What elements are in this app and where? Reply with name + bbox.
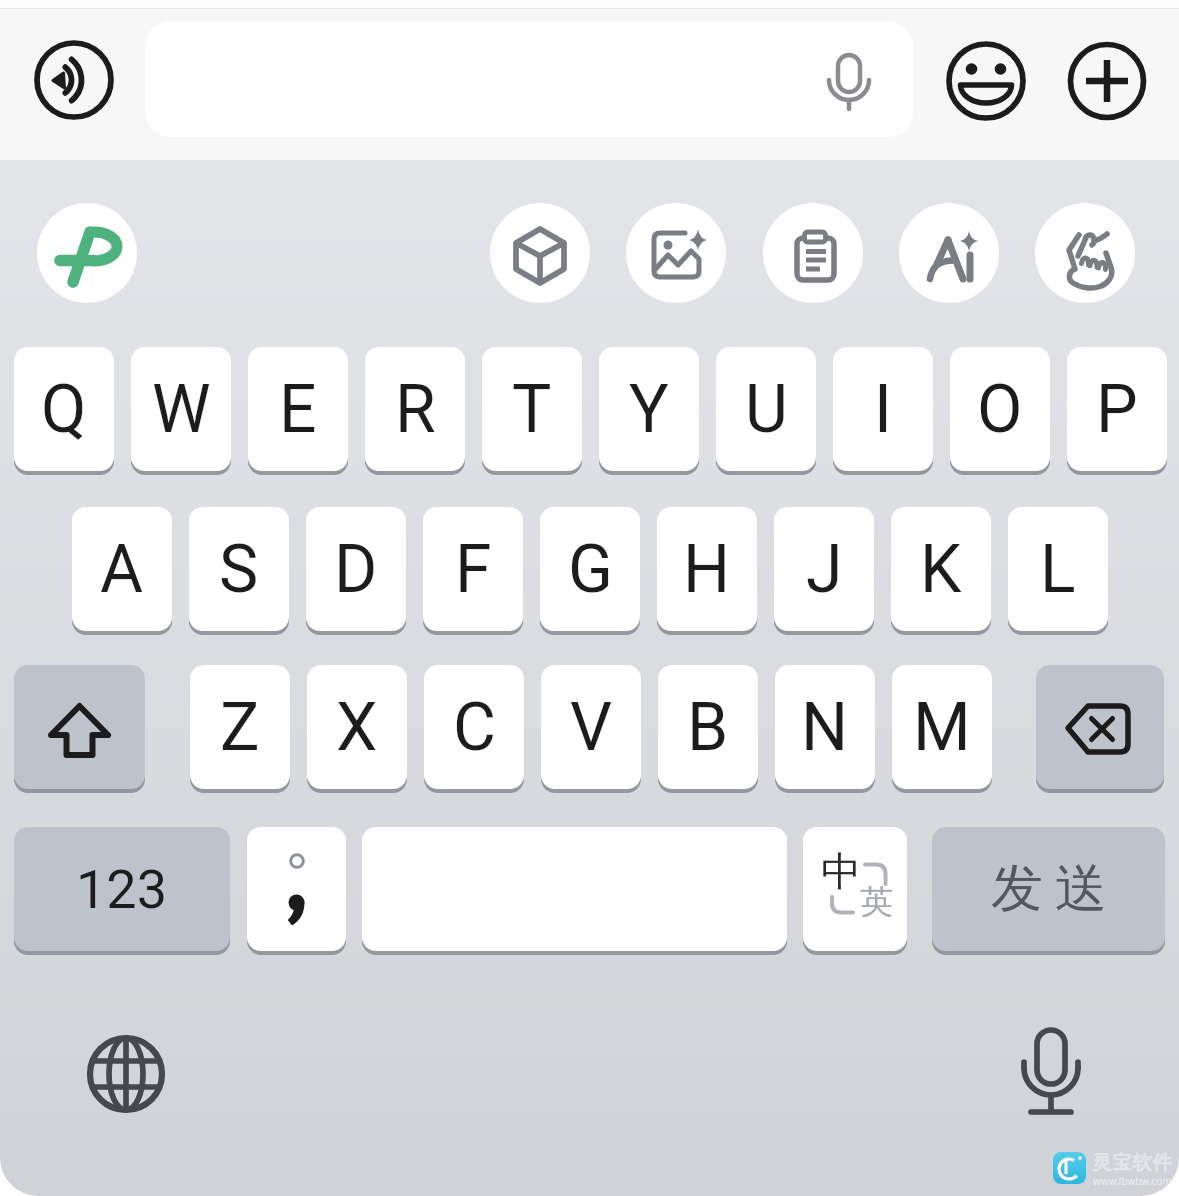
button[interactable]: J	[774, 507, 874, 631]
button[interactable]	[1068, 42, 1146, 120]
staticText: Q	[41, 371, 87, 448]
staticText: A	[100, 531, 144, 608]
button[interactable]: I	[833, 347, 933, 471]
button[interactable]: K	[891, 507, 991, 631]
button[interactable]: B	[658, 665, 758, 789]
staticText: H	[683, 531, 731, 608]
staticText: T	[512, 371, 552, 448]
button[interactable]	[626, 203, 726, 303]
button[interactable]: N	[775, 665, 875, 789]
staticText: J	[806, 531, 843, 608]
button[interactable]: A	[72, 507, 172, 631]
staticText: O	[977, 371, 1023, 448]
button[interactable]: L	[1008, 507, 1108, 631]
button[interactable]: G	[540, 507, 640, 631]
staticText: D	[334, 531, 378, 608]
staticText: 英	[860, 881, 893, 923]
staticText: L	[1040, 531, 1076, 608]
button[interactable]: S	[189, 507, 289, 631]
button[interactable]	[763, 203, 863, 303]
staticText: M	[913, 689, 971, 766]
button[interactable]: 中	[803, 827, 907, 951]
button[interactable]: C	[424, 665, 524, 789]
button[interactable]: H	[657, 507, 757, 631]
button[interactable]: E	[248, 347, 348, 471]
staticText: www.lbwbw.com	[1093, 1174, 1172, 1188]
button[interactable]	[145, 21, 913, 137]
button[interactable]	[14, 665, 145, 789]
staticText: 中	[821, 846, 861, 896]
staticText: X	[336, 689, 378, 766]
button[interactable]: Z	[190, 665, 290, 789]
staticText: K	[920, 531, 962, 608]
staticText: P	[1096, 371, 1138, 448]
button[interactable]	[1012, 1020, 1092, 1120]
button[interactable]: D	[306, 507, 406, 631]
staticText: Y	[629, 371, 669, 448]
staticText: R	[395, 371, 436, 448]
staticText: N	[801, 689, 849, 766]
button[interactable]	[490, 203, 590, 303]
button[interactable]: Q	[14, 347, 114, 471]
button[interactable]: F	[423, 507, 523, 631]
button[interactable]: R	[365, 347, 465, 471]
button[interactable]: W	[131, 347, 231, 471]
staticText: W	[152, 371, 211, 448]
staticText: C	[453, 689, 496, 766]
button[interactable]	[1035, 203, 1135, 303]
button[interactable]	[1036, 665, 1164, 789]
button[interactable]	[899, 203, 999, 303]
staticText: 123	[76, 858, 168, 921]
button[interactable]	[362, 827, 787, 951]
button[interactable]: U	[716, 347, 816, 471]
button[interactable]: 发送	[932, 827, 1165, 951]
staticText: U	[745, 371, 788, 448]
button[interactable]	[247, 827, 346, 951]
button[interactable]	[37, 203, 137, 303]
staticText: I	[874, 371, 892, 448]
button[interactable]	[86, 1035, 166, 1115]
staticText: 发送	[985, 856, 1113, 922]
button[interactable]: P	[1067, 347, 1167, 471]
staticText: G	[568, 531, 613, 608]
button[interactable]: X	[307, 665, 407, 789]
button[interactable]: M	[892, 665, 992, 789]
staticText: Z	[220, 689, 260, 766]
button[interactable]: T	[482, 347, 582, 471]
button[interactable]: O	[950, 347, 1050, 471]
button[interactable]	[946, 41, 1026, 121]
staticText: V	[570, 689, 613, 766]
button[interactable]: V	[541, 665, 641, 789]
button[interactable]: 123	[14, 827, 230, 951]
button[interactable]: Y	[599, 347, 699, 471]
staticText: 灵宝软件	[1092, 1151, 1172, 1175]
button[interactable]	[36, 42, 112, 118]
staticText: B	[687, 689, 729, 766]
staticText: F	[455, 531, 492, 608]
staticText: E	[279, 371, 317, 448]
staticText: S	[219, 531, 259, 608]
